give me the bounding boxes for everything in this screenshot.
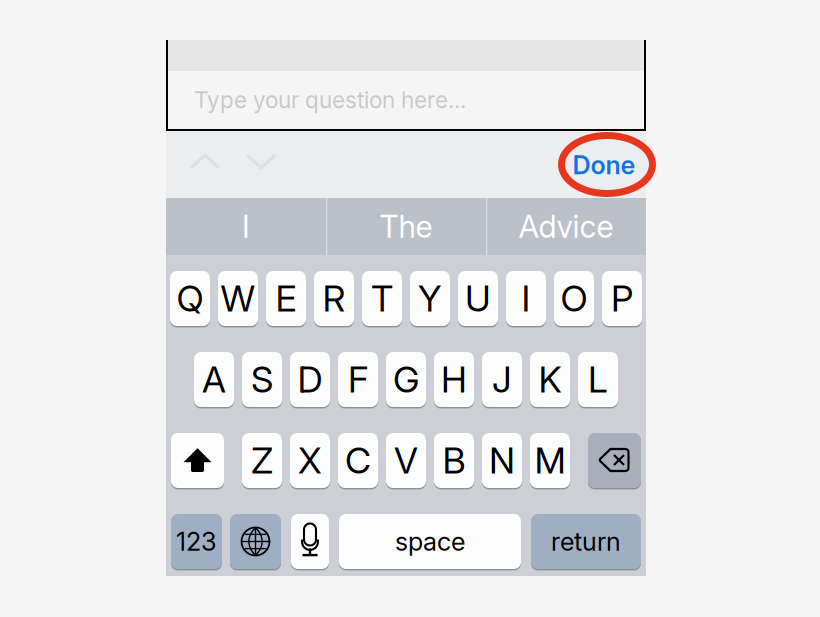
staticText: O [560, 277, 587, 320]
button[interactable]: Done [556, 145, 652, 185]
button[interactable]: The [326, 198, 486, 255]
staticText: space [395, 526, 465, 557]
button[interactable]: 123 [171, 514, 222, 569]
button[interactable]: C [338, 433, 378, 488]
staticText: F [348, 358, 368, 401]
button[interactable]: I [506, 271, 546, 326]
staticText: E [275, 277, 296, 320]
staticText: D [297, 358, 322, 401]
staticText: G [393, 358, 419, 401]
button[interactable]: O [554, 271, 594, 326]
button[interactable]: R [314, 271, 354, 326]
staticText: R [322, 277, 345, 320]
staticText: X [298, 439, 322, 482]
staticText: S [251, 358, 273, 401]
staticText: Q [176, 277, 203, 320]
staticText: J [492, 358, 512, 401]
button[interactable]: Next keyboard [230, 514, 281, 569]
staticText: T [371, 277, 393, 320]
staticText: return [551, 526, 621, 557]
staticText: Advice [518, 208, 613, 245]
button[interactable]: P [602, 271, 642, 326]
staticText: P [611, 277, 633, 320]
staticText: The [379, 208, 432, 245]
button[interactable]: V [386, 433, 426, 488]
button[interactable]: S [242, 352, 282, 407]
staticText: V [394, 439, 418, 482]
button[interactable]: N [482, 433, 522, 488]
button[interactable]: Previous field [189, 153, 221, 170]
button[interactable]: Z [242, 433, 282, 488]
button[interactable]: A [194, 352, 234, 407]
button[interactable]: F [338, 352, 378, 407]
button[interactable]: Delete [588, 433, 641, 488]
button[interactable]: Dictation [291, 514, 329, 569]
staticText: L [588, 358, 608, 401]
button[interactable]: X [290, 433, 330, 488]
staticText: A [202, 358, 226, 401]
button[interactable]: H [434, 352, 474, 407]
button[interactable]: T [362, 271, 402, 326]
button[interactable]: U [458, 271, 498, 326]
button[interactable]: J [482, 352, 522, 407]
button[interactable]: I [166, 198, 326, 255]
staticText: C [345, 439, 371, 482]
staticText: B [442, 439, 465, 482]
staticText: H [441, 358, 467, 401]
button[interactable]: G [386, 352, 426, 407]
staticText: 123 [176, 526, 217, 557]
button[interactable]: Shift [171, 433, 224, 488]
button[interactable]: M [530, 433, 570, 488]
button[interactable]: E [266, 271, 306, 326]
button[interactable]: L [578, 352, 618, 407]
staticText: Done [572, 150, 635, 180]
staticText: N [489, 439, 515, 482]
button[interactable]: Advice [486, 198, 646, 255]
staticText: Z [251, 439, 273, 482]
staticText: K [538, 358, 561, 401]
button[interactable]: Next field [245, 153, 277, 170]
staticText: I [521, 277, 530, 320]
staticText: I [242, 208, 250, 245]
staticText: U [465, 277, 491, 320]
button[interactable]: W [218, 271, 258, 326]
button[interactable]: Y [410, 271, 450, 326]
button[interactable]: return [531, 514, 641, 569]
button[interactable]: K [530, 352, 570, 407]
staticText: Y [418, 277, 442, 320]
staticText: M [534, 439, 565, 482]
button[interactable]: Q [170, 271, 210, 326]
button[interactable]: B [434, 433, 474, 488]
button[interactable]: space [339, 514, 521, 569]
staticText: Type your question here... [194, 86, 466, 114]
staticText: W [220, 277, 255, 320]
button[interactable]: D [290, 352, 330, 407]
